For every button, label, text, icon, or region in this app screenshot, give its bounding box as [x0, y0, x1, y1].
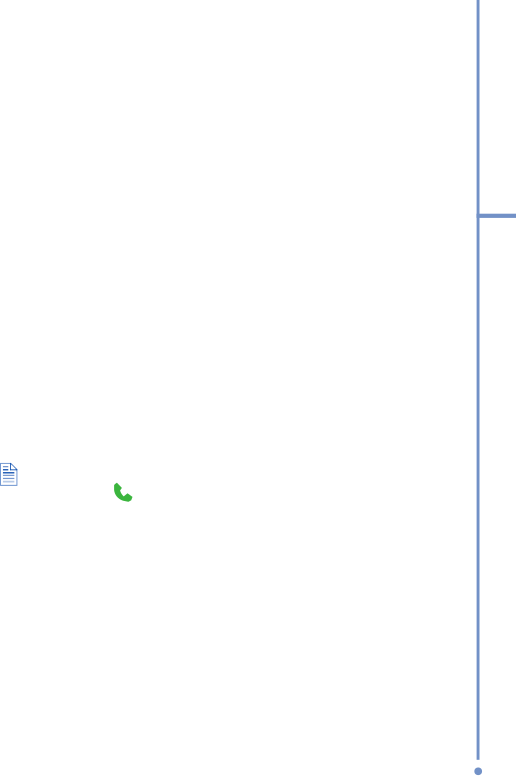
button[interactable]: Call [113, 481, 134, 503]
button[interactable]: Open document [0, 462, 19, 487]
